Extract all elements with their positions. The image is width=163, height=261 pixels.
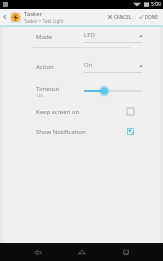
staticText: Tasker > Task Light — [24, 18, 64, 24]
button[interactable]: Back — [0, 9, 10, 25]
staticText: 120 — [36, 93, 43, 98]
button[interactable]: DONE — [136, 9, 160, 25]
button[interactable]: Timeout — [3, 81, 160, 101]
staticText: 5:09 — [151, 1, 161, 8]
staticText: Tasker — [24, 10, 43, 18]
button[interactable]: Mode — [3, 27, 160, 47]
staticText: Action — [36, 63, 84, 71]
staticText: LED — [84, 31, 138, 39]
staticText: Show Notification — [36, 128, 127, 136]
button[interactable]: Recents — [112, 243, 140, 261]
button[interactable]: Show Notification — [3, 123, 160, 140]
staticText: Keep screen on — [36, 108, 127, 116]
staticText: DONE — [145, 14, 158, 20]
staticText: Timeout — [36, 85, 60, 93]
staticText: Mode — [36, 33, 84, 41]
button[interactable]: Keep screen on — [3, 103, 160, 120]
staticText: CANCEL — [114, 14, 132, 20]
button[interactable]: CANCEL — [105, 9, 134, 25]
button[interactable]: Back — [24, 243, 52, 261]
button[interactable]: Home — [68, 243, 96, 261]
button[interactable]: Action — [3, 57, 160, 77]
staticText: On — [84, 61, 138, 69]
